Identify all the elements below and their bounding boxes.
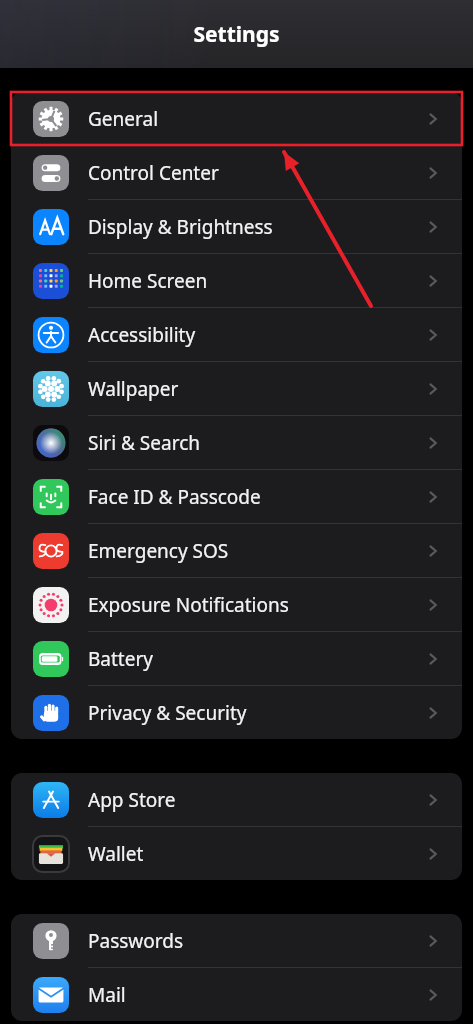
button[interactable]: Home Screen	[11, 254, 462, 307]
staticText: App Store	[88, 787, 176, 813]
staticText: Passwords	[88, 928, 184, 954]
button[interactable]: App Store	[11, 773, 462, 826]
staticText: Mail	[88, 982, 126, 1008]
button[interactable]: Privacy & Security	[11, 686, 462, 739]
staticText: Battery	[88, 646, 153, 672]
staticText: Privacy & Security	[88, 700, 247, 726]
staticText: Wallpaper	[88, 376, 179, 402]
button[interactable]: Siri & Search	[11, 416, 462, 469]
button[interactable]: Display & Brightness	[11, 200, 462, 253]
button[interactable]: Mail	[11, 968, 462, 1021]
staticText: Control Center	[88, 160, 219, 186]
button[interactable]: Face ID & Passcode	[11, 470, 462, 523]
button[interactable]: Control Center	[11, 146, 462, 199]
staticText: Face ID & Passcode	[88, 484, 261, 510]
staticText: Siri & Search	[88, 430, 201, 456]
staticText: Settings	[0, 20, 473, 49]
staticText: Home Screen	[88, 268, 208, 294]
staticText: Display & Brightness	[88, 214, 273, 240]
staticText: Accessibility	[88, 322, 196, 348]
button[interactable]: Emergency SOS	[11, 524, 462, 577]
staticText: Exposure Notifications	[88, 592, 289, 618]
button[interactable]: Battery	[11, 632, 462, 685]
staticText: General	[88, 106, 159, 132]
button[interactable]: Exposure Notifications	[11, 578, 462, 631]
button[interactable]: Wallet	[11, 827, 462, 880]
staticText: Wallet	[88, 841, 144, 867]
staticText: Emergency SOS	[88, 538, 229, 564]
button[interactable]: Passwords	[11, 914, 462, 967]
button[interactable]: Wallpaper	[11, 362, 462, 415]
button[interactable]: General	[11, 92, 462, 145]
button[interactable]: Accessibility	[11, 308, 462, 361]
